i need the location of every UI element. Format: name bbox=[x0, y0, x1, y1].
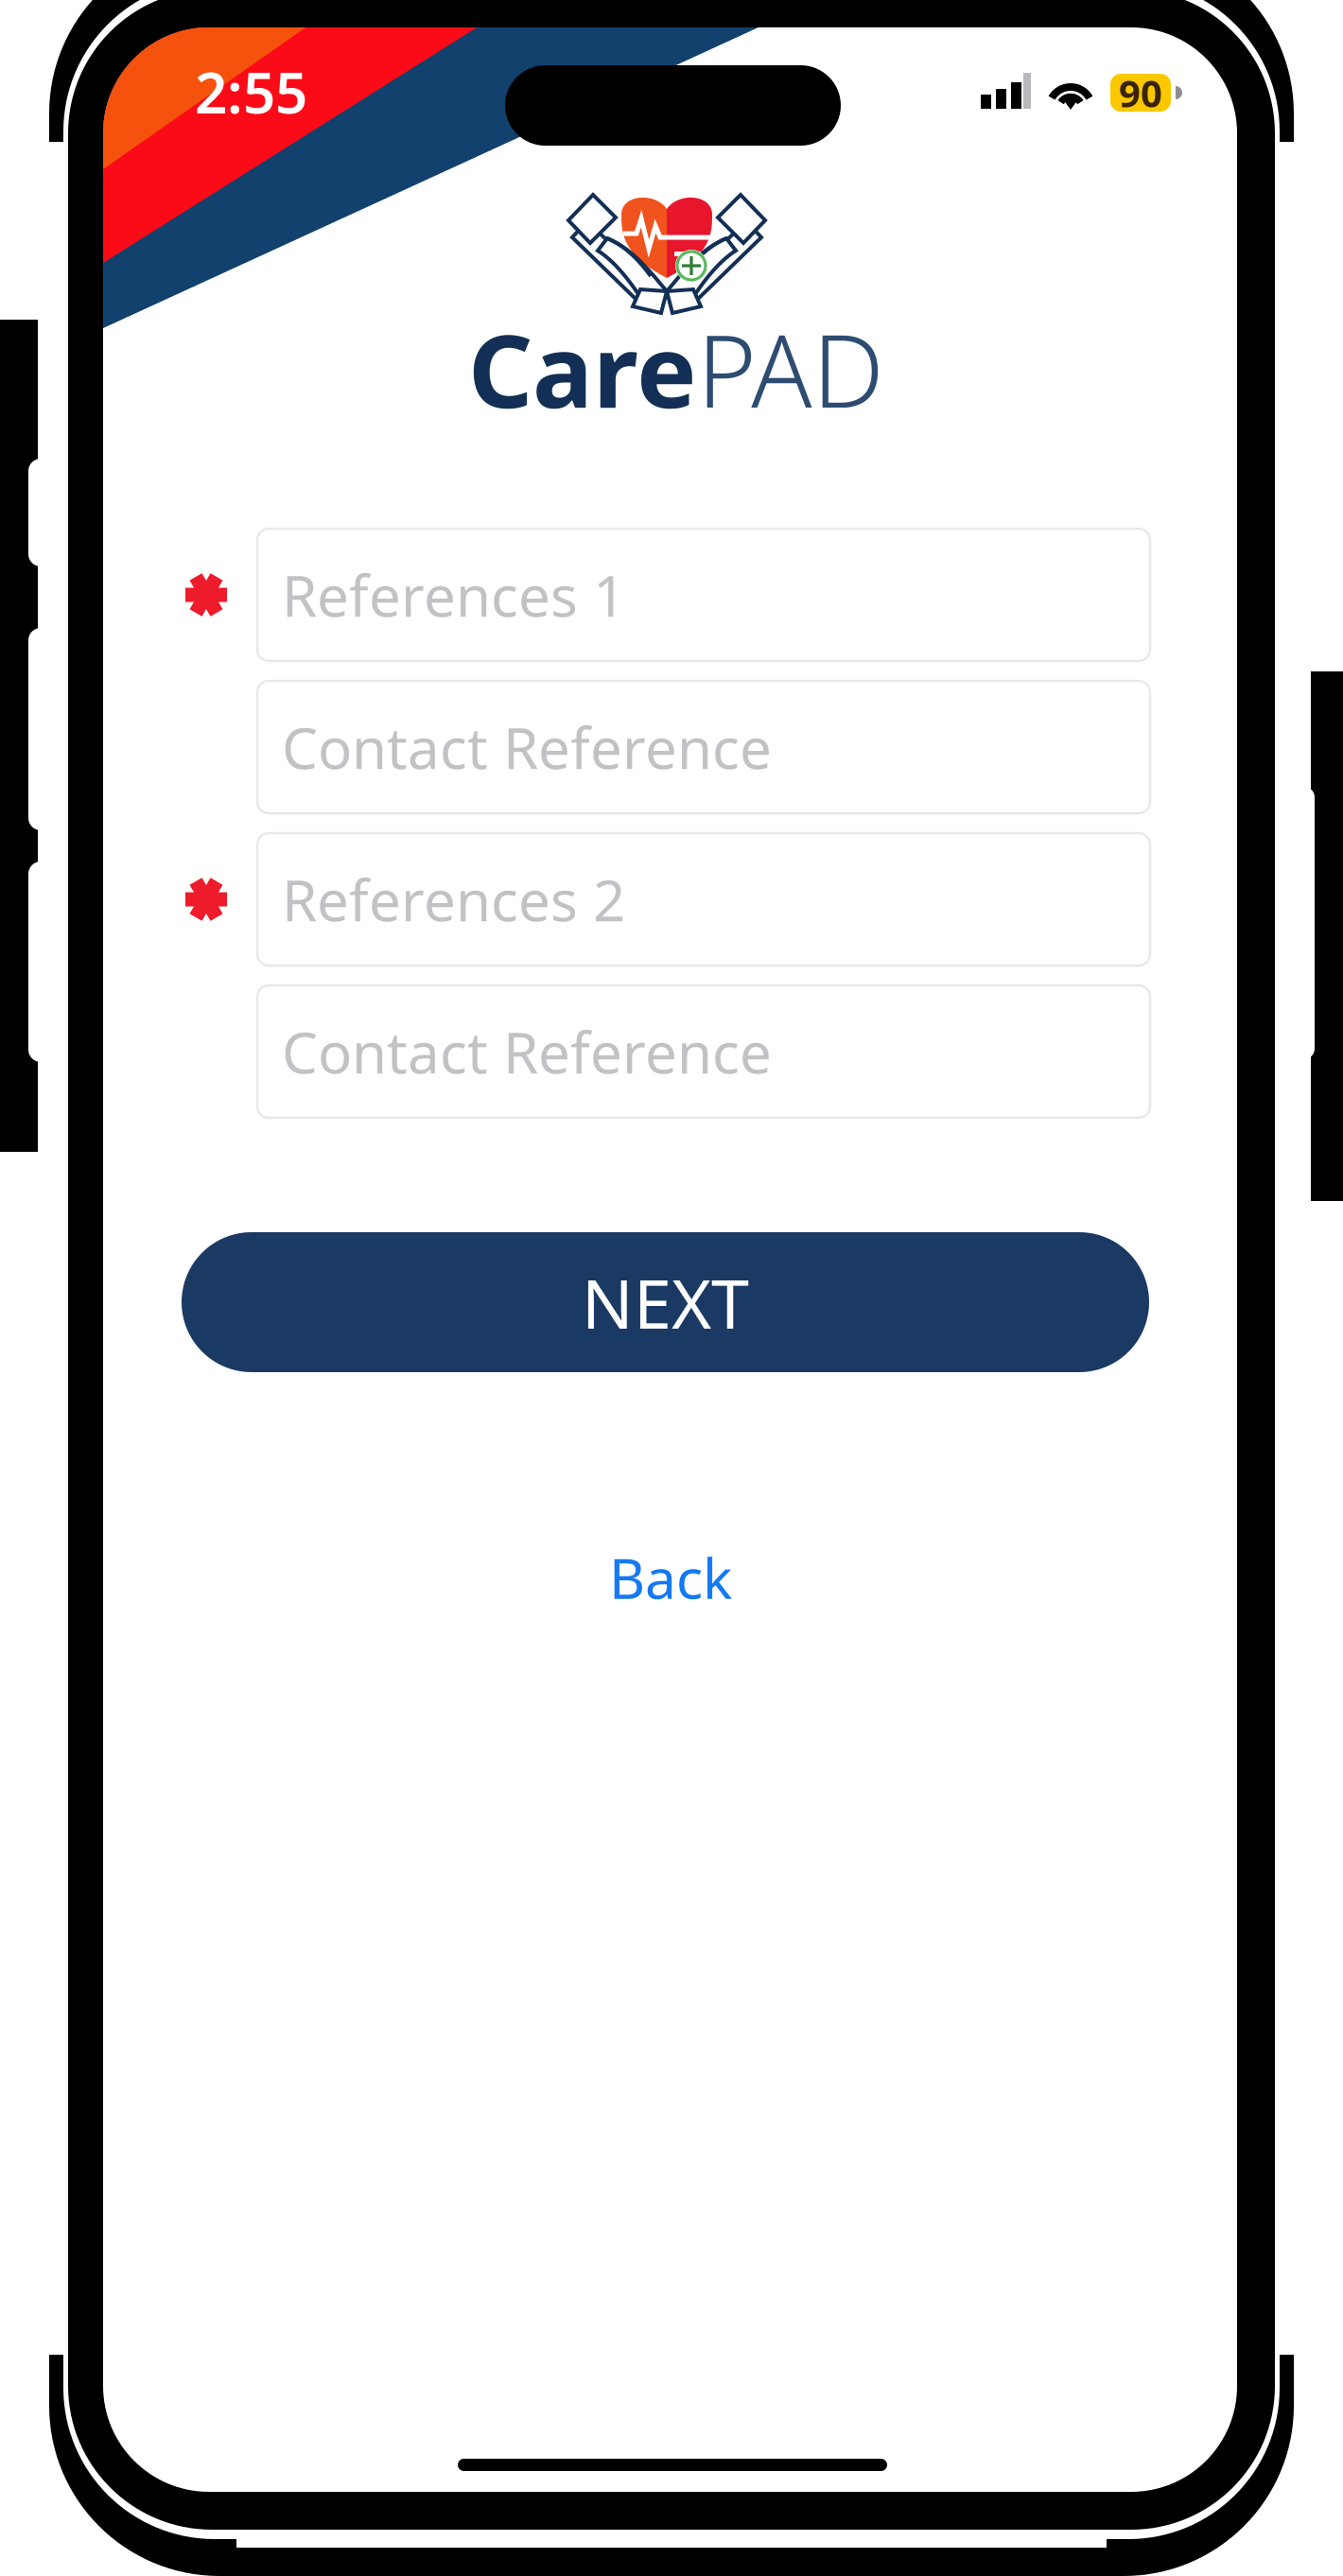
staticText: References 1 bbox=[282, 557, 625, 633]
staticText: PAD bbox=[697, 302, 884, 436]
staticText: Back bbox=[609, 1540, 732, 1614]
button[interactable]: Back bbox=[567, 1540, 775, 1614]
staticText: 90 bbox=[1119, 68, 1162, 118]
staticText: NEXT bbox=[582, 1257, 749, 1347]
staticText: Contact Reference bbox=[282, 709, 772, 785]
button[interactable]: Contact Reference bbox=[257, 985, 1150, 1118]
button[interactable]: NEXT bbox=[182, 1232, 1149, 1372]
staticText: Contact Reference bbox=[282, 1014, 772, 1089]
staticText: Care bbox=[468, 302, 697, 436]
button[interactable]: Contact Reference bbox=[257, 681, 1150, 813]
button[interactable]: References 2 bbox=[257, 833, 1150, 966]
button[interactable]: References 1 bbox=[257, 529, 1150, 661]
staticText: 2:55 bbox=[195, 54, 307, 129]
staticText: References 2 bbox=[282, 862, 625, 937]
